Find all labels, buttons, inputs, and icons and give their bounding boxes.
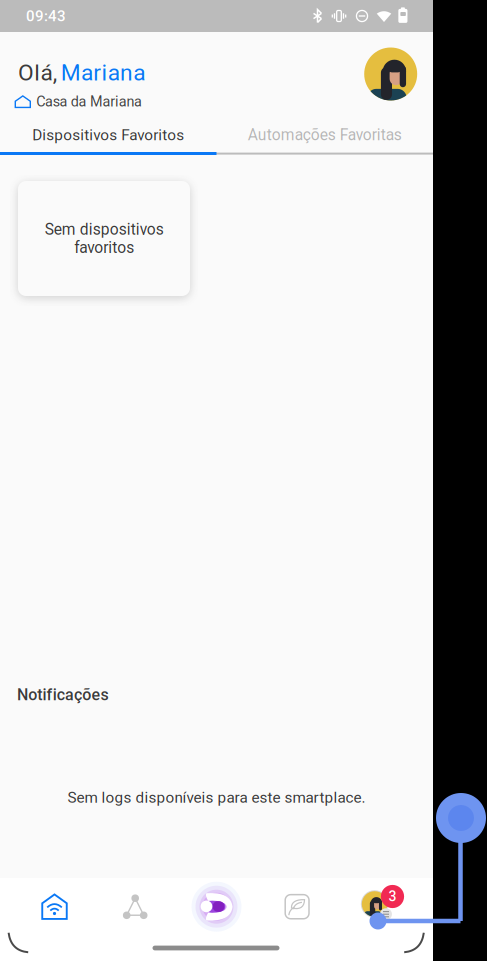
staticText: Dispositivos Favoritos <box>32 126 184 144</box>
staticText: Mariana <box>61 59 145 86</box>
button[interactable]: Assistente <box>187 882 245 932</box>
staticText: Casa da Mariana <box>36 93 142 110</box>
staticText: Notificações <box>17 685 108 704</box>
button[interactable]: Automações Favoritas <box>216 117 433 152</box>
staticText: Olá, <box>18 59 56 86</box>
staticText: 3 <box>388 888 396 905</box>
staticText: Automações Favoritas <box>248 126 402 144</box>
button[interactable]: Automações <box>107 885 163 929</box>
button[interactable]: Perfil <box>364 47 417 100</box>
button[interactable]: Dispositivos Favoritos <box>0 117 216 152</box>
button[interactable]: Dispositivos <box>26 885 82 929</box>
button[interactable]: Economia <box>269 885 325 929</box>
staticText: Sem dispositivos favoritos <box>44 220 163 257</box>
staticText: 09:43 <box>26 7 66 25</box>
button[interactable]: Sem dispositivos favoritos <box>18 181 190 296</box>
button[interactable]: Conta <box>344 883 406 931</box>
staticText: Sem logs disponíveis para este smartplac… <box>67 789 365 806</box>
